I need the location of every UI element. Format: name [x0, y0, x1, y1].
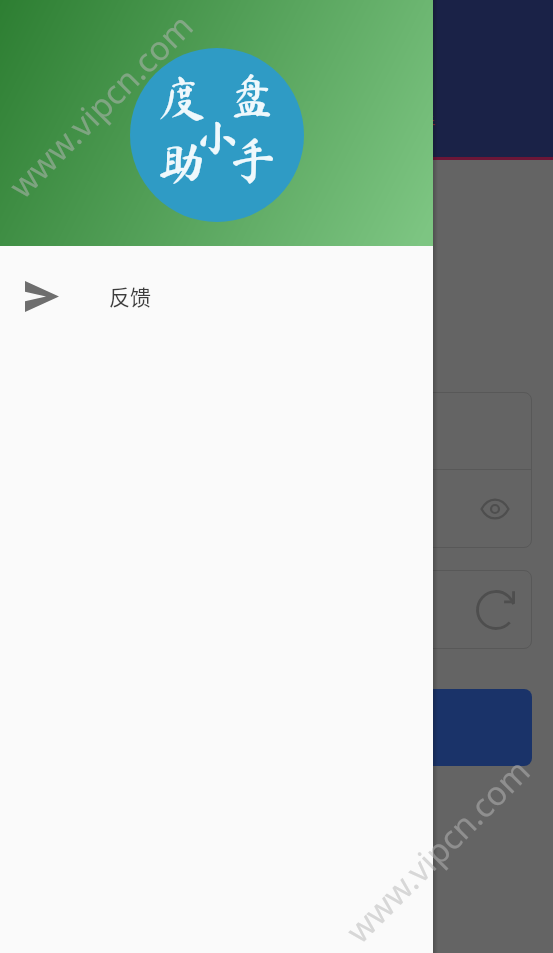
button[interactable]: Account field — [24, 392, 532, 469]
staticText: 盘 — [228, 71, 277, 119]
staticText: 百度网盘助手 — [340, 110, 437, 133]
staticText: www.vipcn.com — [0, 4, 202, 207]
button[interactable]: 反馈 — [0, 246, 433, 346]
button[interactable]: Refresh captcha — [472, 586, 520, 634]
button[interactable]: 登 录 — [24, 689, 532, 766]
staticText: 助 — [157, 139, 206, 187]
button[interactable]: Password field — [24, 470, 532, 548]
staticText: 手 — [229, 136, 278, 184]
staticText: 度 — [158, 74, 207, 122]
staticText: 反馈 — [109, 281, 151, 311]
staticText: 小 — [194, 113, 238, 157]
staticText: www.vipcn.com — [336, 749, 539, 952]
button[interactable]: Show password — [477, 491, 513, 527]
